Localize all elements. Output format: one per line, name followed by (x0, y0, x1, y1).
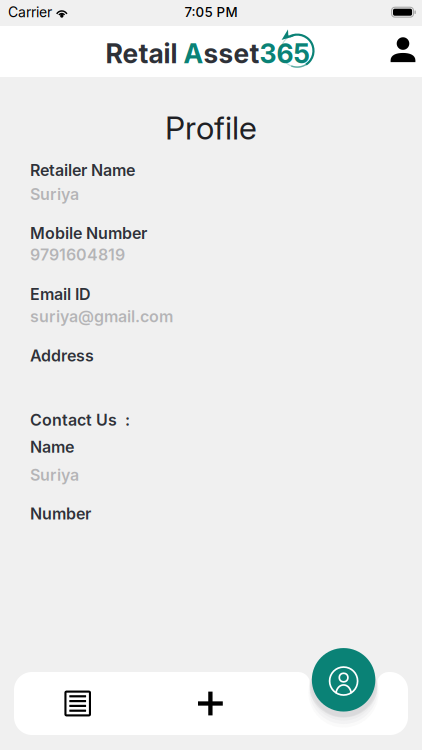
staticText: Retailer Name (30, 160, 135, 180)
staticText: Name (30, 437, 74, 457)
staticText: Carrier (8, 4, 52, 21)
staticText: Profile (165, 108, 257, 147)
staticText: Email ID (30, 284, 91, 304)
staticText: Suriya (30, 184, 79, 204)
staticText: suriya@gmail.com (30, 307, 173, 326)
button[interactable]: Profile (306, 650, 382, 726)
staticText: Retail (105, 37, 183, 70)
button[interactable]: Add (141, 672, 279, 735)
staticText: Suriya (30, 465, 79, 485)
staticText: 7:05 PM (184, 4, 237, 20)
button[interactable]: List (14, 672, 141, 735)
staticText: Number (30, 504, 91, 523)
staticText: Contact Us : (30, 410, 130, 430)
staticText: 9791604819 (30, 245, 125, 264)
button[interactable]: Account (381, 26, 422, 77)
staticText: 365 (259, 37, 309, 70)
staticText: sset (203, 37, 259, 70)
staticText: Address (30, 346, 94, 365)
staticText: Mobile Number (30, 223, 147, 243)
staticText: A (183, 37, 203, 70)
